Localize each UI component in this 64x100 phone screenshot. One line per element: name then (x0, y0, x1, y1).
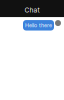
staticText: Chat (24, 6, 39, 14)
staticText: Hello there (25, 22, 52, 29)
